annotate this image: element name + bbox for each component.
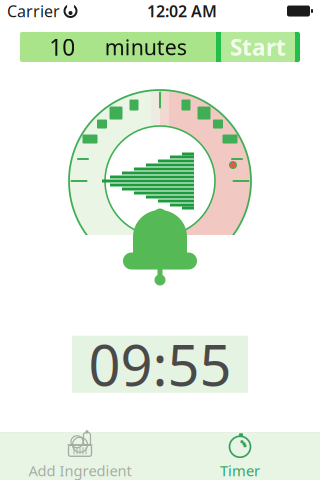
staticText: Add Ingredient xyxy=(28,461,131,480)
button[interactable]: Timer xyxy=(160,433,320,480)
staticText: 09:55 xyxy=(88,327,231,401)
staticText: minutes xyxy=(105,33,187,61)
staticText: Start xyxy=(230,32,286,62)
button[interactable]: Start xyxy=(216,32,300,62)
button[interactable]: Add Ingredient xyxy=(0,433,160,480)
staticText: Timer xyxy=(220,461,260,480)
staticText: 12:02 AM xyxy=(147,0,217,22)
staticText: Carrier xyxy=(7,0,60,22)
staticText: 10 xyxy=(49,32,75,62)
